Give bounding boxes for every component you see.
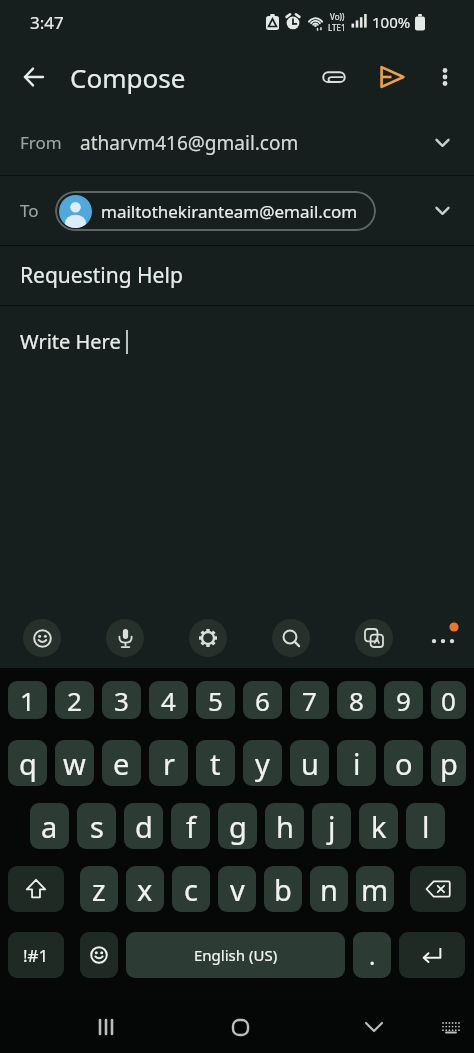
staticText: .	[369, 939, 376, 972]
button[interactable]: j	[312, 803, 351, 849]
button[interactable]	[352, 1005, 396, 1049]
staticText: y	[255, 744, 270, 783]
staticText: n	[320, 870, 338, 909]
staticText: LTE1	[328, 22, 346, 33]
button[interactable]: c	[172, 866, 210, 912]
button[interactable]: 7	[290, 681, 329, 719]
button[interactable]	[399, 932, 465, 978]
button[interactable]: From	[0, 110, 474, 175]
button[interactable]: mailtothekiranteam@email.com	[55, 191, 376, 231]
button[interactable]: m	[356, 866, 394, 912]
button[interactable]: 4	[149, 681, 188, 719]
button[interactable]	[8, 866, 64, 912]
staticText: To	[20, 199, 39, 222]
staticText: 4	[161, 683, 176, 718]
button[interactable]: z	[80, 866, 118, 912]
button[interactable]: Write Here	[0, 306, 474, 595]
button[interactable]: h	[265, 803, 304, 849]
button[interactable]: t	[196, 740, 235, 786]
button[interactable]	[106, 619, 144, 657]
staticText: l	[422, 807, 430, 846]
staticText: j	[328, 807, 336, 846]
staticText: i	[353, 744, 361, 783]
button[interactable]: y	[243, 740, 282, 786]
button[interactable]	[310, 53, 358, 101]
staticText: t	[210, 744, 221, 783]
staticText: atharvm416@gmail.com	[80, 130, 299, 156]
button[interactable]: English (US)	[126, 932, 345, 978]
staticText: 100%	[372, 12, 411, 32]
button[interactable]: e	[102, 740, 141, 786]
staticText: !#1	[23, 944, 49, 967]
staticText: 0	[441, 683, 456, 718]
staticText: Requesting Help	[20, 261, 183, 290]
staticText: b	[274, 870, 292, 909]
button[interactable]: d	[124, 803, 163, 849]
staticText: u	[301, 744, 319, 783]
button[interactable]	[80, 932, 118, 978]
button[interactable]: g	[218, 803, 257, 849]
staticText: 3:47	[30, 11, 64, 34]
button[interactable]: f	[171, 803, 210, 849]
staticText: Write Here	[20, 328, 126, 355]
button[interactable]	[431, 1007, 471, 1047]
button[interactable]	[410, 866, 466, 912]
button[interactable]: !#1	[8, 932, 64, 978]
button[interactable]: 3	[102, 681, 141, 719]
button[interactable]: Requesting Help	[0, 246, 474, 305]
staticText: z	[92, 870, 106, 909]
button[interactable]: n	[310, 866, 348, 912]
button[interactable]: i	[337, 740, 376, 786]
button[interactable]: w	[55, 740, 94, 786]
staticText: e	[113, 744, 130, 783]
staticText: w	[63, 744, 86, 783]
button[interactable]: 1	[8, 681, 47, 719]
button[interactable]	[189, 619, 227, 657]
staticText: 8	[349, 683, 364, 718]
button[interactable]: o	[384, 740, 423, 786]
button[interactable]: 9	[384, 681, 423, 719]
button[interactable]	[422, 616, 466, 660]
button[interactable]: v	[218, 866, 256, 912]
button[interactable]	[85, 1005, 129, 1049]
button[interactable]: k	[359, 803, 398, 849]
button[interactable]: 6	[243, 681, 282, 719]
staticText: c	[184, 870, 198, 909]
staticText: p	[440, 744, 458, 783]
button[interactable]: 2	[55, 681, 94, 719]
staticText: r	[163, 744, 175, 783]
staticText: English (US)	[194, 945, 278, 965]
staticText: Vo))	[330, 11, 345, 22]
button[interactable]: b	[264, 866, 302, 912]
staticText: g	[229, 807, 247, 846]
staticText: mailtothekiranteam@email.com	[101, 200, 358, 223]
button[interactable]: u	[290, 740, 329, 786]
staticText: 2	[67, 683, 82, 718]
button[interactable]	[422, 54, 468, 100]
button[interactable]: s	[77, 803, 116, 849]
button[interactable]: 5	[196, 681, 235, 719]
button[interactable]: q	[8, 740, 47, 786]
button[interactable]: To	[0, 176, 474, 245]
button[interactable]	[368, 53, 416, 101]
button[interactable]: x	[126, 866, 164, 912]
button[interactable]: .	[353, 932, 391, 978]
button[interactable]: 8	[337, 681, 376, 719]
button[interactable]: p	[431, 740, 466, 786]
button[interactable]: 0	[431, 681, 466, 719]
staticText: o	[395, 744, 413, 783]
button[interactable]	[218, 1005, 262, 1049]
staticText: a	[41, 807, 58, 846]
button[interactable]	[23, 619, 61, 657]
staticText: 7	[302, 683, 317, 718]
staticText: q	[19, 744, 37, 783]
button[interactable]	[272, 619, 310, 657]
staticText: v	[230, 870, 245, 909]
button[interactable]	[6, 49, 62, 105]
button[interactable]: r	[149, 740, 188, 786]
staticText: f	[186, 807, 196, 846]
button[interactable]: a	[30, 803, 69, 849]
staticText: Compose	[70, 60, 186, 95]
button[interactable]	[355, 619, 393, 657]
button[interactable]: l	[406, 803, 445, 849]
